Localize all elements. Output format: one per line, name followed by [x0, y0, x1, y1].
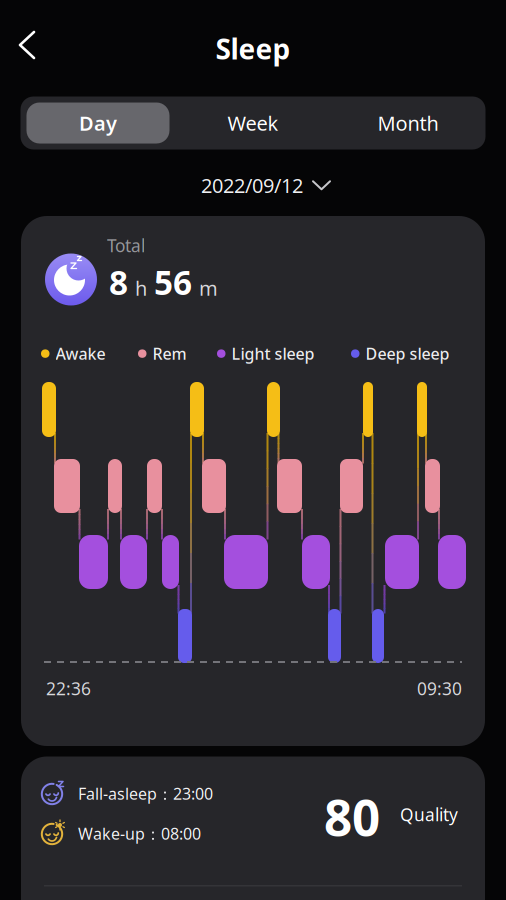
staticText: Light sleep [231, 343, 314, 364]
staticText: h [135, 275, 147, 301]
staticText: Total [107, 234, 145, 257]
staticText: Wake-up：08:00 [78, 823, 201, 844]
staticText: Fall-asleep：23:00 [78, 783, 213, 804]
staticText: Day [79, 110, 117, 136]
staticText: Week [227, 110, 278, 136]
staticText: Quality [400, 803, 458, 826]
staticText: 2022/09/12 [201, 172, 303, 199]
staticText: Month [377, 110, 438, 136]
staticText: Awake [55, 343, 105, 364]
staticText: Rem [152, 343, 186, 364]
button[interactable]: 2022/09/12 [201, 172, 331, 199]
staticText: Sleep [215, 30, 290, 67]
button[interactable]: Week [175, 96, 330, 149]
button[interactable]: Month [330, 96, 485, 149]
staticText: 80 [324, 784, 380, 849]
staticText: Deep sleep [365, 343, 449, 364]
staticText: 56 [154, 260, 192, 304]
staticText: 09:30 [417, 677, 462, 700]
button[interactable]: Day [20, 96, 175, 149]
staticText: 22:36 [46, 677, 91, 700]
staticText: 8 [109, 260, 128, 304]
staticText: m [199, 275, 218, 301]
button[interactable]: Back [8, 23, 52, 67]
